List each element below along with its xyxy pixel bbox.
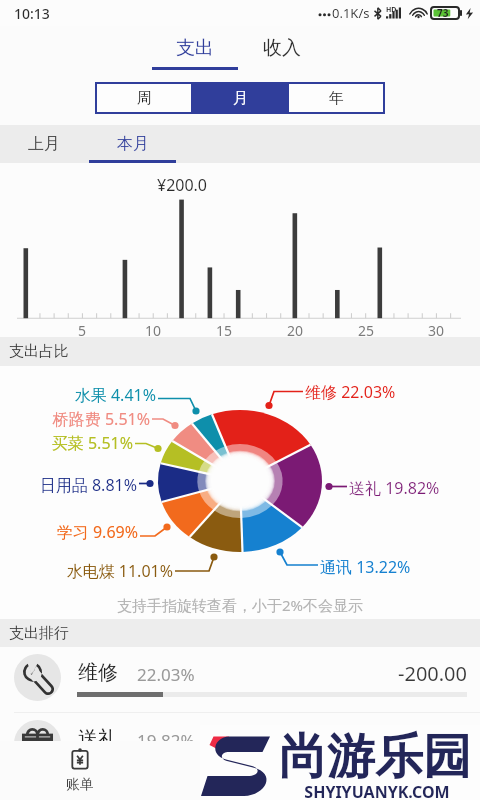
staticText: 桥路费 5.51% (0, 408, 150, 430)
button[interactable]: 支出 (152, 26, 238, 75)
staticText: 周 (137, 89, 152, 108)
staticText: -200.00 (320, 660, 467, 687)
button[interactable]: 年 (289, 84, 383, 112)
staticText: 30 (422, 321, 450, 340)
staticText: 22.03% (137, 663, 195, 686)
staticText: 送礼 (78, 726, 118, 751)
staticText: 水电煤 11.01% (5, 560, 173, 582)
button[interactable]: 图表 (160, 741, 320, 800)
staticText: 25 (352, 321, 380, 340)
button[interactable]: 账单 (0, 741, 160, 800)
staticText: 买菜 5.51% (0, 432, 133, 454)
staticText: 0.1K/s (332, 4, 370, 22)
staticText: ¥200.0 (130, 174, 234, 196)
staticText: 尚游乐园 (279, 727, 471, 787)
staticText: 支出排行 (9, 624, 69, 643)
button[interactable]: 送礼 (0, 713, 480, 779)
staticText: -180.00 (320, 726, 467, 753)
staticText: 上月 (28, 134, 60, 154)
staticText: 20 (281, 321, 309, 340)
staticText: 19.82% (137, 729, 195, 752)
staticText: 支持手指旋转查看，小于2%不会显示 (0, 595, 480, 615)
staticText: 73 (437, 6, 449, 20)
staticText: 支出占比 (9, 342, 69, 361)
staticText: 日用品 8.81% (0, 474, 137, 496)
staticText: 月 (233, 89, 248, 108)
staticText: 年 (329, 89, 344, 108)
button[interactable]: 上月 (4, 125, 84, 163)
staticText: 本月 (117, 134, 149, 154)
button[interactable]: 维修 (0, 647, 480, 713)
button[interactable]: 周 (97, 84, 191, 112)
staticText: 水果 4.41% (0, 384, 156, 406)
staticText: SHYIYUANYK.COM (287, 781, 467, 800)
staticText: 5 (68, 321, 96, 340)
staticText: 支出 (176, 36, 214, 60)
button[interactable]: 月 (193, 84, 287, 112)
staticText: 通讯 13.22% (320, 556, 411, 578)
staticText: 维修 22.03% (305, 381, 396, 403)
staticText: HD (386, 5, 397, 15)
button[interactable]: 收入 (239, 26, 325, 75)
staticText: 收入 (263, 36, 301, 60)
staticText: 维修 (78, 660, 118, 685)
staticText: 10:13 (14, 4, 50, 23)
staticText: 10 (139, 321, 167, 340)
button[interactable]: 本月 (89, 125, 176, 163)
staticText: 账单 (66, 776, 94, 794)
staticText: 15 (210, 321, 238, 340)
button[interactable]: 我的 (320, 741, 480, 800)
staticText: 送礼 19.82% (349, 477, 440, 499)
staticText: 我的 (386, 776, 414, 794)
staticText: 学习 9.69% (0, 521, 138, 543)
